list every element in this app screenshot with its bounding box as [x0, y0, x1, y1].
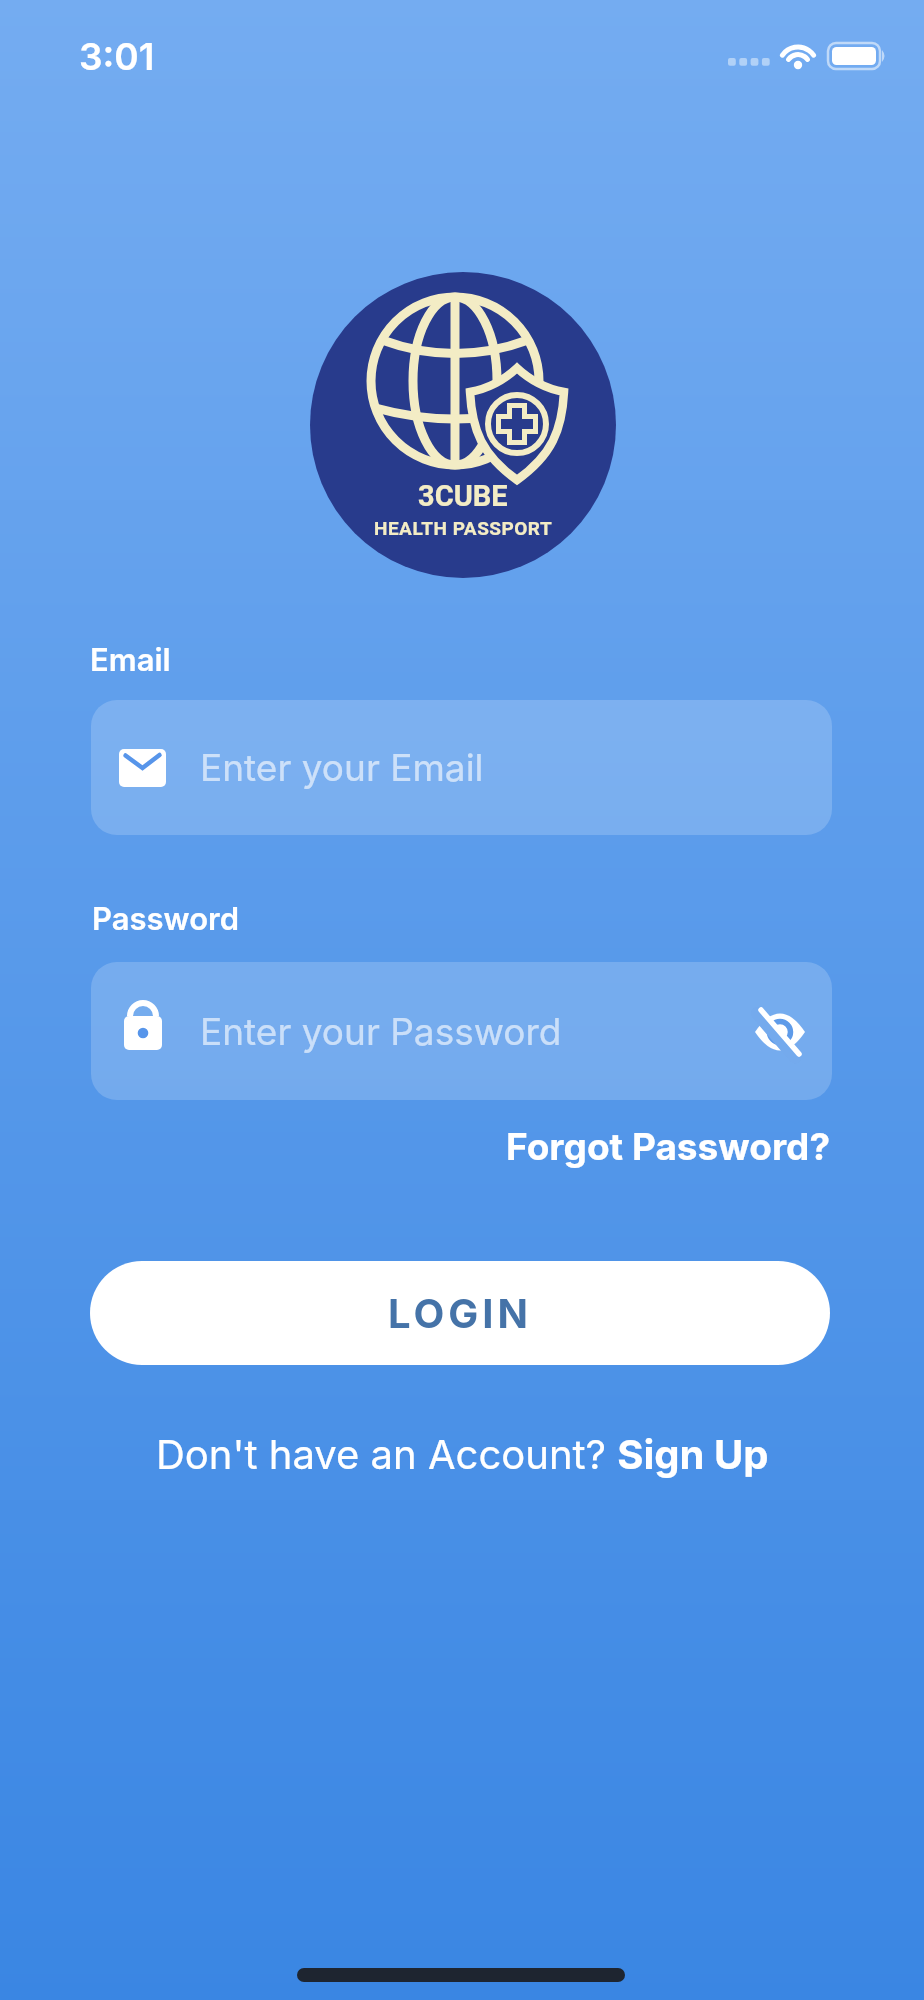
button[interactable]: Forgot Password?: [506, 1124, 831, 1169]
button[interactable]: Don't have an Account? Sign Up: [156, 1430, 769, 1478]
staticText: 3CUBE: [418, 479, 508, 513]
staticText: HEALTH PASSPORT: [374, 517, 553, 539]
staticText: Forgot Password?: [506, 1124, 831, 1169]
staticText: 3:01: [79, 34, 155, 79]
button[interactable]: Enter your Password: [91, 962, 832, 1100]
staticText: Don't have an Account? Sign Up: [156, 1430, 769, 1478]
button[interactable]: LOGIN: [90, 1261, 830, 1365]
staticText: Password: [92, 900, 239, 938]
staticText: Enter your Email: [200, 745, 484, 790]
staticText: LOGIN: [388, 1289, 533, 1337]
button[interactable]: Enter your Email: [91, 700, 832, 835]
staticText: Enter your Password: [200, 1009, 750, 1054]
staticText: Email: [90, 641, 171, 679]
button[interactable]: [750, 999, 814, 1063]
